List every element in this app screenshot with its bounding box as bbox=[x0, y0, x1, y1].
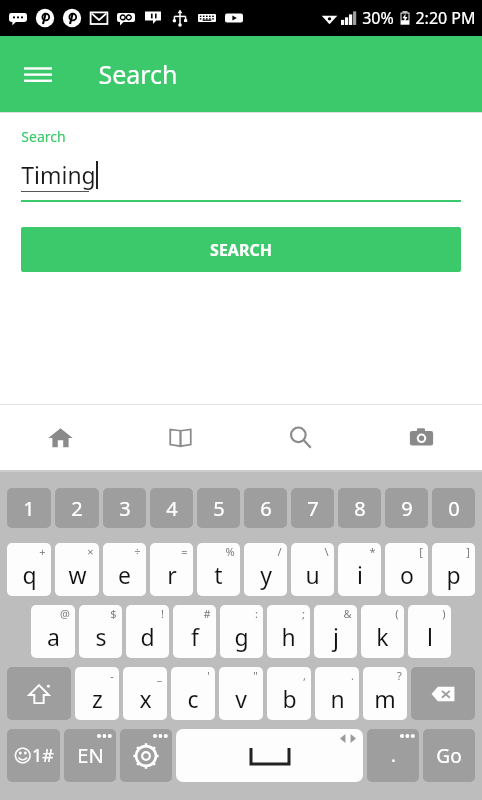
button[interactable]: Timing bbox=[0, 154, 482, 194]
button[interactable]: SEARCH bbox=[21, 227, 461, 272]
staticText: 9 bbox=[401, 495, 413, 522]
staticText: j bbox=[333, 621, 339, 652]
staticText: - bbox=[110, 668, 114, 683]
staticText: SEARCH bbox=[210, 239, 272, 261]
staticText: o bbox=[400, 559, 414, 590]
staticText: Timing bbox=[21, 159, 96, 190]
staticText: d bbox=[140, 621, 155, 652]
button[interactable]: 7 bbox=[291, 488, 334, 528]
button[interactable]: EN bbox=[64, 729, 116, 782]
button[interactable]: ; bbox=[267, 605, 310, 658]
button[interactable]: Backspace bbox=[411, 667, 475, 720]
staticText: r bbox=[167, 559, 177, 590]
staticText: x bbox=[139, 683, 152, 714]
staticText: h bbox=[281, 621, 296, 652]
button[interactable]: ☺1# bbox=[7, 729, 60, 782]
button[interactable]: % bbox=[197, 543, 240, 596]
button[interactable]: . bbox=[367, 729, 419, 782]
button[interactable]: @ bbox=[31, 605, 75, 658]
button[interactable]: 4 bbox=[150, 488, 193, 528]
button[interactable]: Space bbox=[176, 729, 363, 782]
staticText: @ bbox=[60, 606, 70, 621]
button[interactable]: & bbox=[314, 605, 357, 658]
staticText: ? bbox=[397, 668, 402, 683]
button[interactable]: Open navigation drawer bbox=[14, 50, 62, 98]
staticText: 2 bbox=[71, 495, 83, 522]
staticText: + bbox=[39, 544, 46, 559]
button[interactable]: × bbox=[55, 543, 99, 596]
staticText: i bbox=[357, 559, 363, 590]
staticText: 3 bbox=[119, 495, 131, 522]
button[interactable]: ÷ bbox=[103, 543, 146, 596]
staticText: " bbox=[253, 668, 258, 683]
button[interactable]: / bbox=[244, 543, 287, 596]
staticText: c bbox=[187, 683, 199, 714]
button[interactable]: Home bbox=[0, 405, 120, 470]
button[interactable]: : bbox=[220, 605, 263, 658]
staticText: Search bbox=[98, 57, 178, 91]
staticText: ☺1# bbox=[13, 743, 54, 768]
staticText: s bbox=[95, 621, 107, 652]
staticText: n bbox=[330, 683, 345, 714]
button[interactable]: ] bbox=[432, 543, 475, 596]
button[interactable]: ! bbox=[126, 605, 169, 658]
button[interactable]: ' bbox=[171, 667, 215, 720]
button[interactable]: 3 bbox=[103, 488, 146, 528]
staticText: 8 bbox=[354, 495, 366, 522]
staticText: q bbox=[22, 559, 37, 590]
button[interactable]: 9 bbox=[385, 488, 428, 528]
button[interactable]: Search bbox=[240, 405, 361, 470]
staticText: / bbox=[277, 544, 282, 559]
button[interactable]: " bbox=[219, 667, 263, 720]
button[interactable]: - bbox=[75, 667, 119, 720]
staticText: . bbox=[391, 743, 396, 768]
button[interactable]: Shift bbox=[7, 667, 71, 720]
button[interactable]: # bbox=[173, 605, 216, 658]
button[interactable]: . bbox=[315, 667, 359, 720]
staticText: Go bbox=[436, 743, 462, 769]
staticText: w bbox=[68, 559, 87, 590]
button[interactable]: ( bbox=[361, 605, 404, 658]
staticText: z bbox=[92, 683, 103, 714]
staticText: ! bbox=[161, 606, 164, 621]
button[interactable]: 8 bbox=[338, 488, 381, 528]
staticText: \ bbox=[324, 544, 329, 559]
button[interactable]: Settings bbox=[120, 729, 172, 782]
button[interactable]: 6 bbox=[244, 488, 287, 528]
button[interactable]: ) bbox=[408, 605, 451, 658]
button[interactable]: $ bbox=[79, 605, 122, 658]
staticText: 0 bbox=[448, 495, 460, 522]
button[interactable]: Camera bbox=[361, 405, 482, 470]
staticText: g bbox=[234, 621, 249, 652]
staticText: ) bbox=[442, 606, 446, 621]
staticText: Search bbox=[21, 127, 66, 146]
button[interactable]: 1 bbox=[7, 488, 51, 528]
staticText: 6 bbox=[260, 495, 272, 522]
button[interactable]: _ bbox=[123, 667, 167, 720]
button[interactable]: * bbox=[338, 543, 381, 596]
staticText: ] bbox=[466, 544, 470, 559]
button[interactable]: [ bbox=[385, 543, 428, 596]
staticText: t bbox=[214, 559, 223, 590]
staticText: 7 bbox=[307, 495, 319, 522]
button[interactable]: ? bbox=[363, 667, 407, 720]
button[interactable]: Library bbox=[120, 405, 240, 470]
staticText: ' bbox=[207, 668, 210, 683]
button[interactable]: + bbox=[7, 543, 51, 596]
button[interactable]: \ bbox=[291, 543, 334, 596]
staticText: EN bbox=[77, 742, 104, 769]
staticText: f bbox=[191, 621, 199, 652]
staticText: l bbox=[427, 621, 433, 652]
button[interactable]: 0 bbox=[432, 488, 475, 528]
button[interactable]: , bbox=[267, 667, 311, 720]
button[interactable]: 2 bbox=[55, 488, 99, 528]
staticText: ; bbox=[302, 606, 305, 621]
staticText: & bbox=[343, 606, 352, 621]
staticText: 4 bbox=[166, 495, 178, 522]
button[interactable]: Go bbox=[423, 729, 475, 782]
button[interactable]: 5 bbox=[197, 488, 240, 528]
staticText: p bbox=[446, 559, 461, 590]
staticText: b bbox=[282, 683, 297, 714]
button[interactable]: = bbox=[150, 543, 193, 596]
staticText: v bbox=[235, 683, 247, 714]
